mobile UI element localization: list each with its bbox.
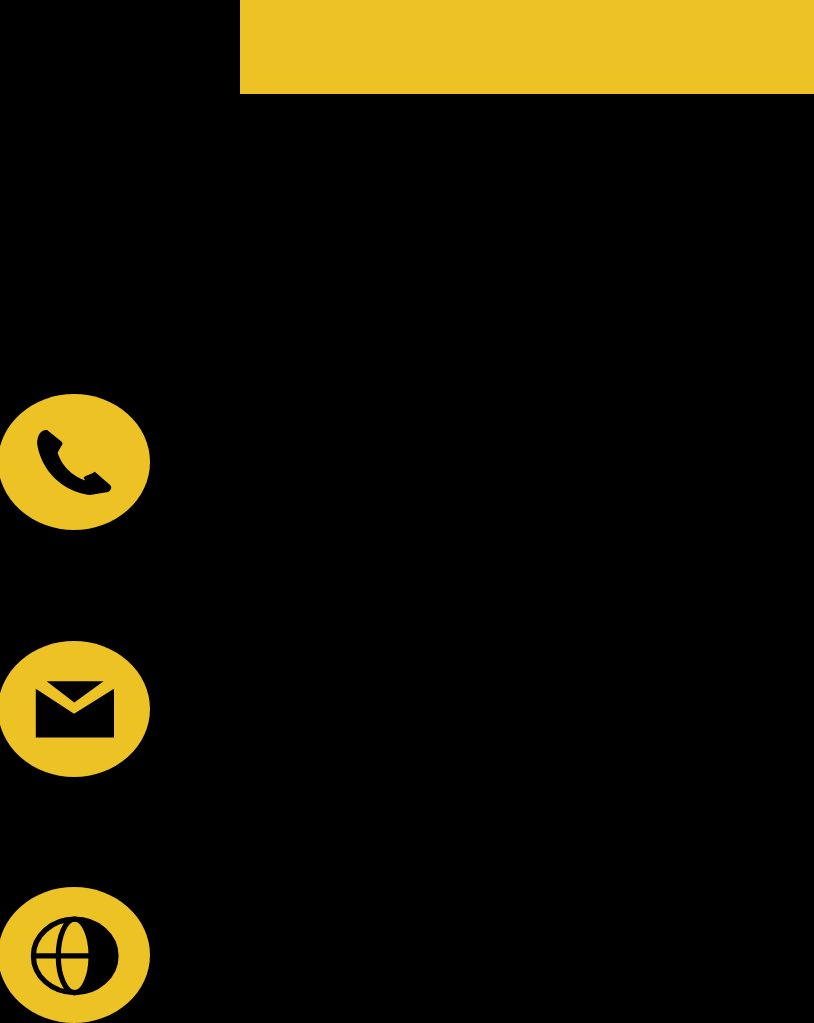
button[interactable]: Website — [0, 887, 150, 1023]
button[interactable]: Call — [0, 394, 150, 530]
button[interactable]: Email — [0, 641, 150, 777]
